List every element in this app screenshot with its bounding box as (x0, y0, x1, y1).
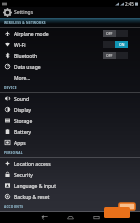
staticText: ACCOUNTS (4, 205, 24, 209)
staticText: OFF (106, 53, 113, 58)
button[interactable]: Apps (0, 137, 140, 148)
button[interactable]: Wi-Fi (0, 39, 140, 50)
staticText: Sound (14, 96, 30, 103)
button[interactable]: Location access (0, 158, 140, 169)
button[interactable]: Airplane mode (0, 28, 140, 39)
staticText: 2:45 (125, 1, 134, 7)
button[interactable]: Back (31, 212, 57, 223)
staticText: Backup & reset (14, 194, 50, 201)
staticText: DEVICE (4, 86, 17, 90)
button[interactable]: Bluetooth (0, 50, 140, 61)
button[interactable]: Storage (0, 115, 140, 126)
staticText: Storage (14, 118, 33, 125)
button[interactable]: Language & input (0, 180, 140, 191)
staticText: Bluetooth (14, 53, 38, 60)
staticText: More... (14, 75, 31, 82)
staticText: OFF (106, 31, 113, 36)
staticText: Battery (14, 129, 32, 136)
button[interactable]: Data usage (0, 61, 140, 72)
staticText: Data usage (14, 64, 41, 71)
button[interactable]: Settings (0, 7, 140, 18)
button[interactable]: Security (0, 169, 140, 180)
staticText: WIRELESS & NETWORKS (4, 21, 46, 25)
button[interactable]: Home (57, 212, 83, 223)
staticText: Security (14, 172, 33, 179)
staticText: Apps (14, 140, 26, 147)
staticText: PERSONAL (4, 151, 23, 155)
staticText: Settings (14, 9, 34, 16)
button[interactable]: Battery (0, 126, 140, 137)
button[interactable]: Recent apps (83, 212, 109, 223)
button[interactable]: Sound (0, 93, 140, 104)
staticText: Display (14, 107, 32, 114)
button[interactable]: Backup & reset (0, 191, 140, 202)
staticText: Location access (14, 161, 51, 168)
staticText: Wi-Fi (14, 42, 26, 49)
button[interactable]: Display (0, 104, 140, 115)
button[interactable]: More... (0, 72, 140, 83)
staticText: ON (119, 42, 125, 47)
staticText: Language & input (14, 183, 56, 190)
staticText: Airplane mode (14, 31, 49, 38)
